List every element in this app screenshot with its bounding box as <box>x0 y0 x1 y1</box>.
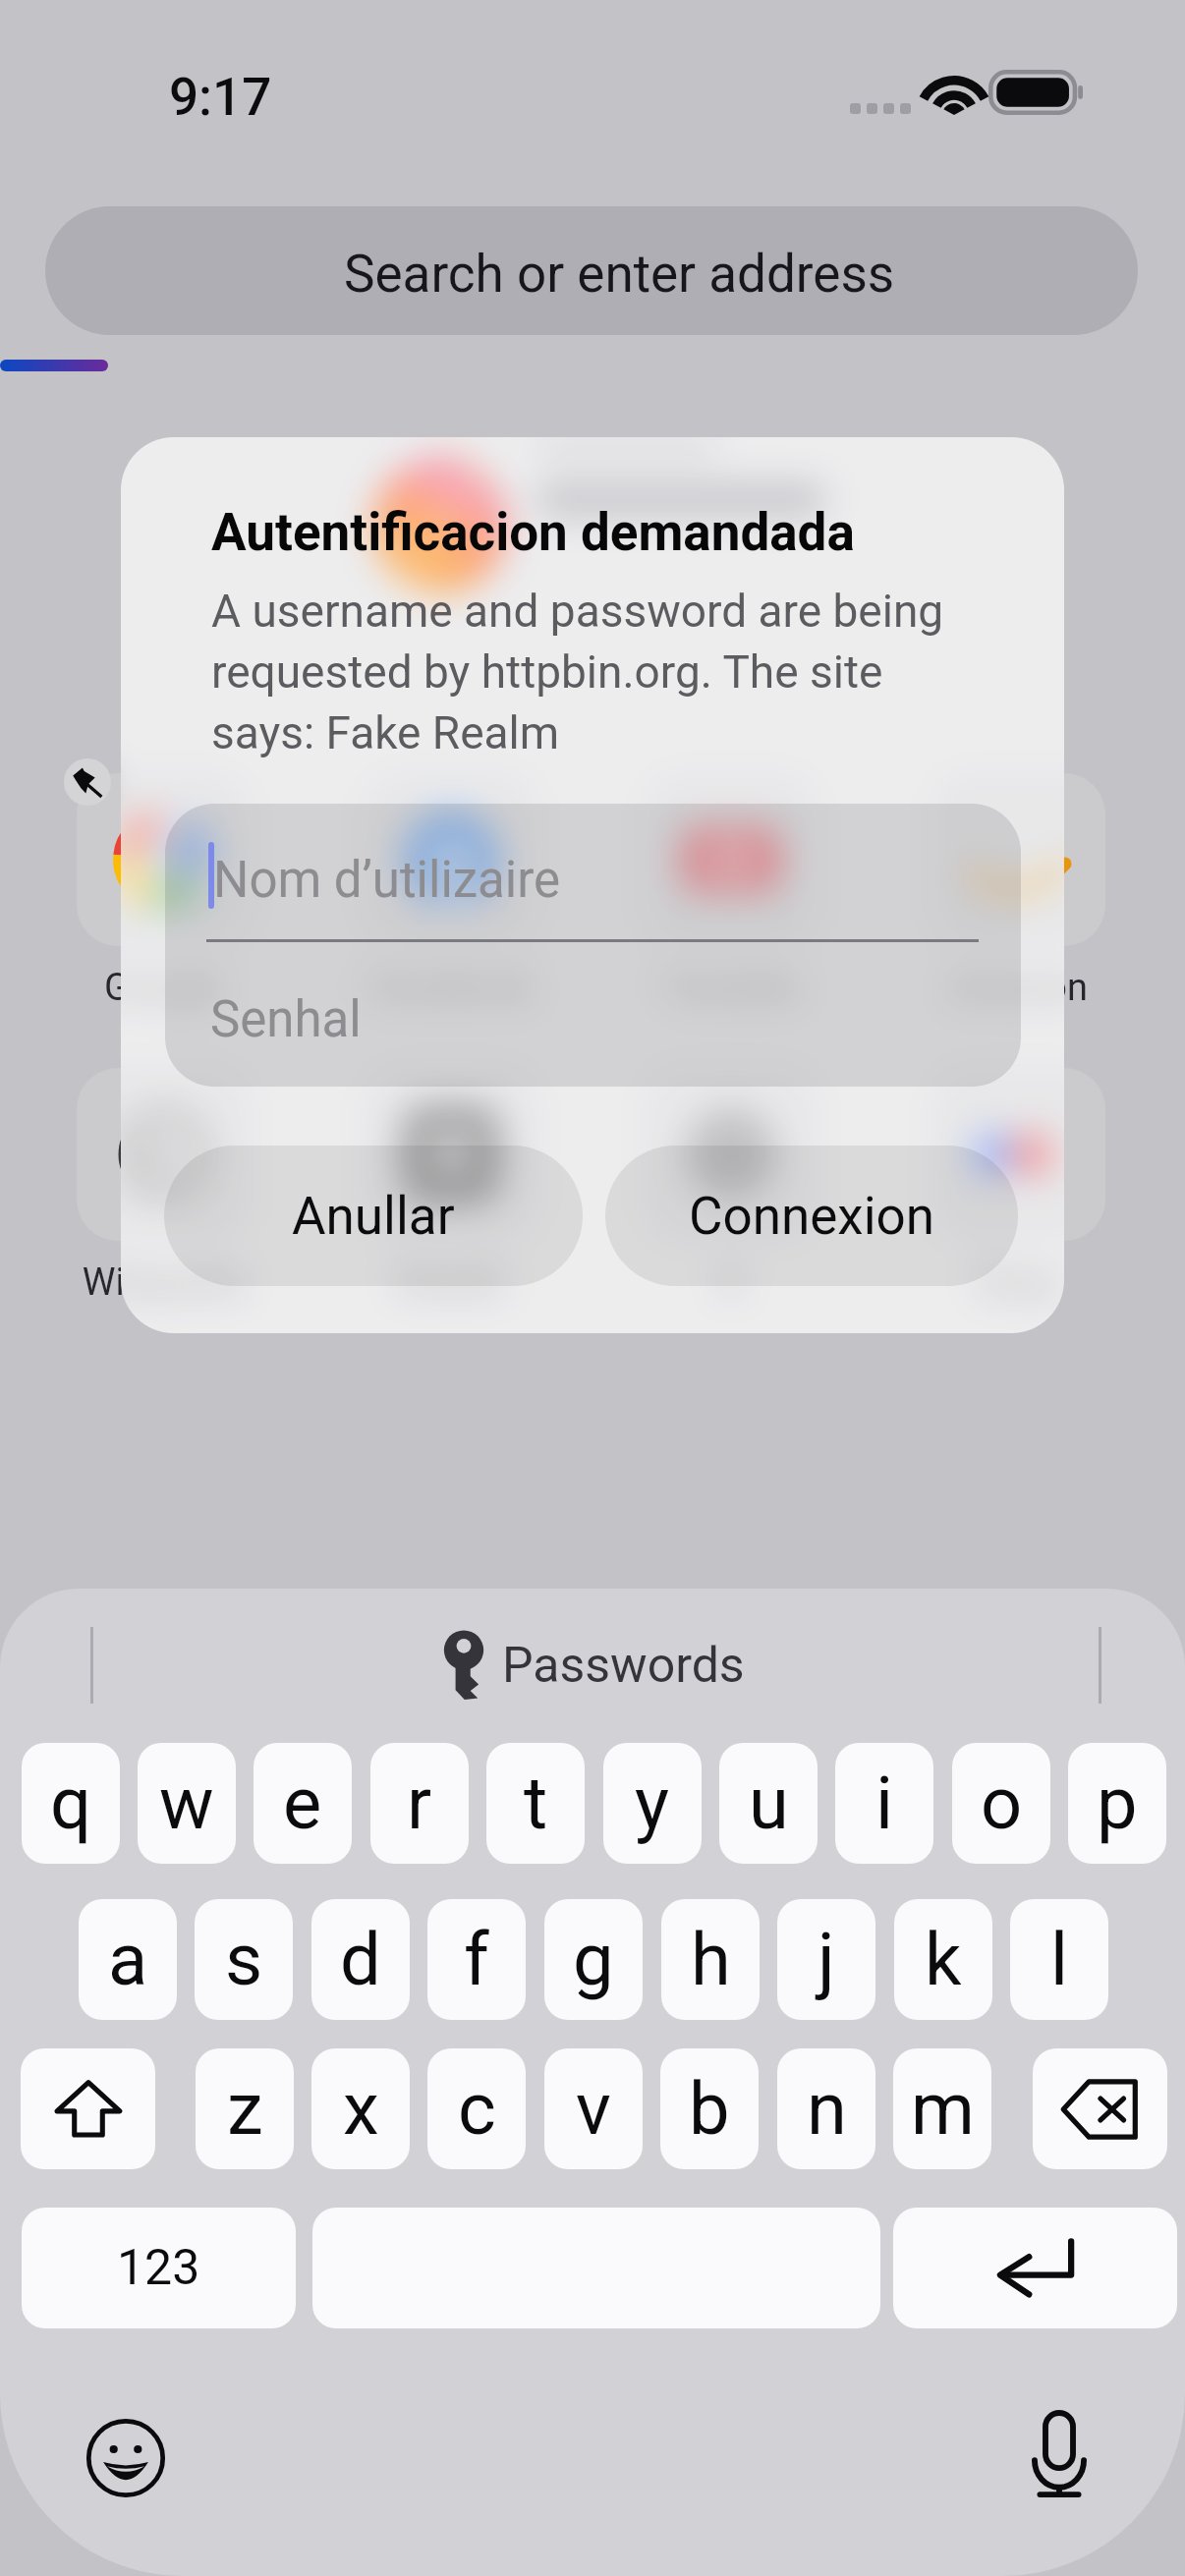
button[interactable] <box>932 1068 1105 1241</box>
button[interactable] <box>365 773 537 946</box>
button[interactable]: f <box>427 1899 526 2020</box>
button[interactable]: g <box>544 1899 643 2020</box>
button[interactable]: z <box>196 2048 294 2169</box>
staticText: y <box>635 1761 670 1846</box>
staticText: z <box>227 2066 263 2152</box>
button[interactable] <box>645 773 818 946</box>
staticText: a <box>108 1917 148 2002</box>
button[interactable]: Search or enter address <box>45 206 1138 335</box>
staticText: b <box>689 2066 730 2152</box>
button[interactable]: t <box>486 1743 585 1864</box>
button[interactable]: l <box>1010 1899 1108 2020</box>
staticText: Wikipedia <box>77 1260 250 1305</box>
button[interactable]: s <box>195 1899 293 2020</box>
staticText: Reddit <box>365 1260 537 1305</box>
staticText: 123 <box>117 2239 200 2297</box>
staticText: Amazon <box>932 966 1105 1010</box>
button[interactable]: h <box>661 1899 760 2020</box>
staticText: A username and password are being reques… <box>211 585 987 759</box>
button[interactable] <box>932 773 1105 946</box>
button[interactable] <box>932 773 1105 946</box>
button[interactable]: r <box>370 1743 469 1864</box>
staticText: e <box>283 1761 322 1846</box>
staticText: Amazon <box>932 966 1105 1010</box>
button[interactable]: u <box>719 1743 818 1864</box>
staticText: f <box>464 1917 489 2002</box>
button[interactable] <box>932 1068 1105 1241</box>
staticText: d <box>340 1917 381 2002</box>
staticText: x <box>343 2066 379 2152</box>
button[interactable] <box>77 773 250 946</box>
staticText: l <box>1050 1917 1068 2002</box>
button[interactable]: v <box>544 2048 643 2169</box>
button[interactable]: Senhal <box>210 990 362 1049</box>
staticText: m <box>911 2066 975 2152</box>
button[interactable]: j <box>777 1899 875 2020</box>
button[interactable]: k <box>894 1899 992 2020</box>
staticText: n <box>807 2066 847 2152</box>
button[interactable] <box>645 1068 818 1241</box>
button[interactable]: Space <box>312 2208 880 2328</box>
staticText: Ebay <box>932 1260 1105 1305</box>
button[interactable]: Connexion <box>605 1146 1018 1286</box>
button[interactable] <box>365 773 537 946</box>
staticText: j <box>818 1917 835 2002</box>
staticText: Google <box>77 966 250 1010</box>
button[interactable] <box>645 773 818 946</box>
button[interactable]: x <box>311 2048 410 2169</box>
staticText: t <box>524 1761 548 1846</box>
button[interactable]: Backspace <box>1033 2048 1167 2169</box>
button[interactable] <box>365 1068 537 1241</box>
staticText: Reddit <box>365 1260 537 1305</box>
button[interactable]: Nom d’utilizaire <box>213 851 561 910</box>
button[interactable] <box>77 1068 250 1241</box>
staticText: Anullar <box>292 1186 455 1247</box>
button[interactable]: q <box>22 1743 120 1864</box>
button[interactable]: Anullar <box>164 1146 583 1286</box>
staticText: X <box>645 1260 818 1305</box>
button[interactable]: d <box>311 1899 410 2020</box>
staticText: i <box>875 1761 893 1846</box>
staticText: v <box>576 2066 611 2152</box>
button[interactable]: Voice input <box>1026 2407 1093 2504</box>
button[interactable] <box>77 1068 250 1241</box>
button[interactable]: y <box>603 1743 702 1864</box>
button[interactable]: o <box>952 1743 1050 1864</box>
staticText: q <box>50 1761 92 1846</box>
button[interactable]: i <box>835 1743 933 1864</box>
staticText: p <box>1097 1761 1138 1846</box>
button[interactable] <box>77 773 250 946</box>
button[interactable]: Emoji keyboard <box>85 2418 166 2498</box>
staticText: X <box>645 1260 818 1305</box>
staticText: Ebay <box>932 1260 1105 1305</box>
button[interactable] <box>365 1068 537 1241</box>
button[interactable]: Shift <box>21 2048 155 2169</box>
staticText: Search or enter address <box>344 244 895 305</box>
staticText: Autentificacion demandada <box>211 502 855 563</box>
staticText: Google <box>77 966 250 1010</box>
button[interactable]: 123 <box>22 2208 296 2328</box>
button[interactable]: b <box>660 2048 759 2169</box>
staticText: k <box>925 1917 962 2002</box>
button[interactable]: e <box>254 1743 352 1864</box>
staticText: u <box>749 1761 789 1846</box>
button[interactable]: w <box>138 1743 236 1864</box>
button[interactable]: c <box>427 2048 526 2169</box>
staticText: g <box>573 1917 614 2002</box>
staticText: r <box>407 1761 432 1846</box>
button[interactable]: n <box>777 2048 875 2169</box>
staticText: s <box>225 1917 263 2002</box>
staticText: Connexion <box>689 1186 935 1247</box>
button[interactable] <box>645 1068 818 1241</box>
staticText: Wikipedia <box>77 1260 250 1305</box>
button[interactable]: Enter <box>893 2208 1177 2328</box>
button[interactable]: m <box>893 2048 991 2169</box>
staticText: 9:17 <box>169 67 272 128</box>
button[interactable]: p <box>1068 1743 1166 1864</box>
staticText: o <box>981 1761 1023 1846</box>
button[interactable]: Passwords <box>443 1623 745 1708</box>
button[interactable]: a <box>79 1899 177 2020</box>
